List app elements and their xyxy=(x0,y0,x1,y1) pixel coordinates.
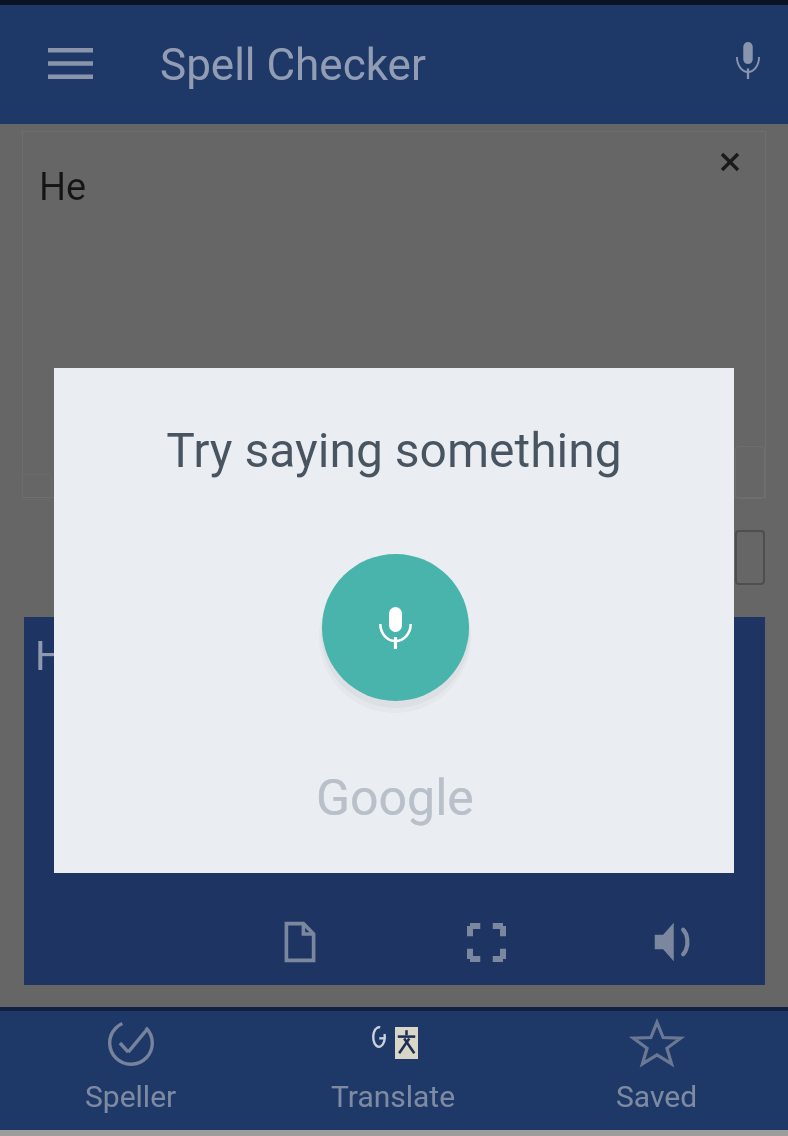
staticText: Google xyxy=(316,769,474,828)
button[interactable]: Fullscreen xyxy=(446,902,526,982)
button[interactable]: Voice input xyxy=(720,32,776,88)
button[interactable]: Speller xyxy=(0,1011,262,1114)
staticText: Saved xyxy=(616,1079,698,1114)
button[interactable]: Speak aloud xyxy=(633,902,713,982)
button[interactable]: Saved xyxy=(525,1011,788,1114)
button[interactable]: Copy xyxy=(260,902,340,982)
staticText: He xyxy=(39,165,87,210)
button[interactable]: Clear text xyxy=(704,136,756,188)
button[interactable]: Start voice input xyxy=(322,554,469,701)
button[interactable]: Translate xyxy=(262,1011,525,1114)
staticText: Speller xyxy=(85,1079,177,1114)
staticText: Spell Checker xyxy=(160,39,426,91)
button[interactable]: Open navigation menu xyxy=(38,31,102,95)
staticText: Translate xyxy=(331,1079,456,1114)
staticText: Try saying something xyxy=(166,422,622,478)
staticText: H xyxy=(35,632,65,680)
